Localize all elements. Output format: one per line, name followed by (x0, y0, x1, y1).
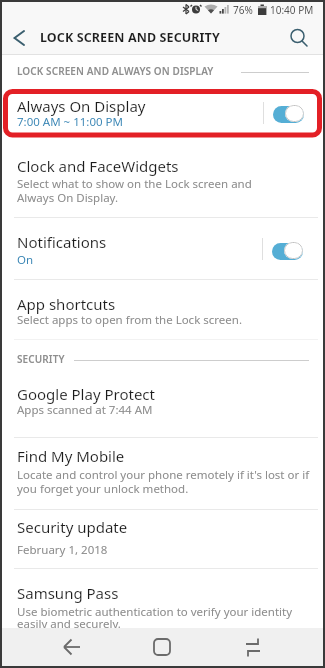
button[interactable] (284, 22, 314, 52)
staticText: SECURITY (17, 352, 65, 366)
button[interactable]: Samsung Pass (0, 568, 325, 628)
staticText: Google Play Protect (17, 384, 155, 404)
staticText: Security update (17, 517, 128, 537)
button[interactable]: Security update (0, 509, 325, 568)
staticText: Notifications (17, 232, 107, 252)
button[interactable]: Clock and FaceWidgets (0, 145, 325, 217)
button[interactable] (137, 628, 187, 668)
staticText: you forget your unlock method. (17, 481, 189, 497)
staticText: 76% (233, 3, 253, 17)
staticText: On (17, 252, 34, 268)
staticText: Select what to show on the Lock screen a… (17, 176, 252, 192)
button[interactable] (272, 243, 303, 260)
button[interactable]: Notifications (0, 217, 325, 279)
staticText: easily and securely. (17, 616, 121, 632)
staticText: Select apps to open from the Lock screen… (17, 312, 242, 328)
staticText: LOCK SCREEN AND ALWAYS ON DISPLAY (17, 64, 214, 78)
staticText: Samsung Pass (17, 583, 119, 603)
staticText: Always On Display. (17, 190, 119, 206)
button[interactable] (273, 106, 304, 123)
staticText: LOCK SCREEN AND SECURITY (40, 29, 220, 46)
button[interactable]: App shortcuts (0, 279, 325, 339)
staticText: Apps scanned at 7:44 AM (17, 402, 153, 418)
button[interactable]: Google Play Protect (0, 366, 325, 437)
staticText: Clock and FaceWidgets (17, 156, 179, 176)
button[interactable] (47, 628, 97, 668)
staticText: 7:00 AM ~ 11:00 PM (17, 114, 123, 130)
button[interactable] (228, 628, 278, 668)
staticText: Find My Mobile (17, 446, 125, 466)
staticText: Always On Display (17, 96, 146, 116)
staticText: App shortcuts (17, 294, 116, 314)
staticText: February 1, 2018 (17, 542, 108, 558)
staticText: Use biometric authentication to verify y… (17, 604, 293, 620)
button[interactable]: Find My Mobile (0, 437, 325, 509)
staticText: 10:40 PM (270, 3, 314, 17)
button[interactable]: Always On Display (0, 89, 325, 137)
button[interactable] (6, 22, 34, 52)
staticText: Locate and control your phone remotely i… (17, 467, 310, 483)
